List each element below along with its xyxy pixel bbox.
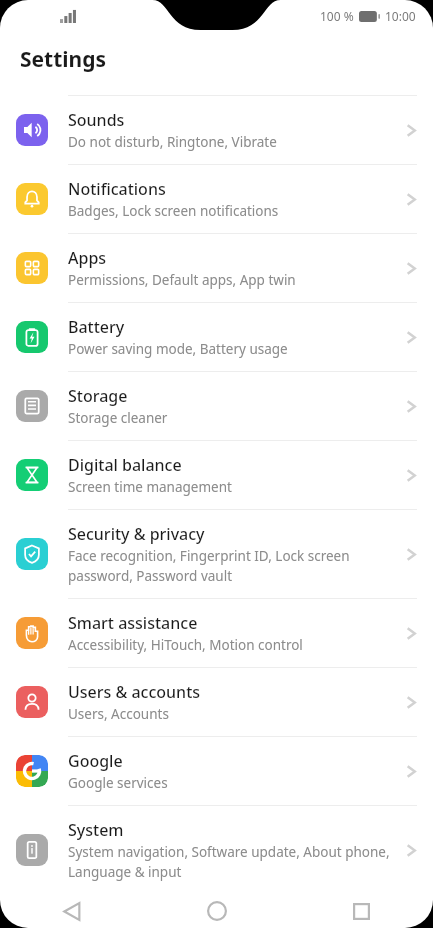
- button[interactable]: Battery: [0, 303, 433, 371]
- staticText: Settings: [20, 45, 107, 74]
- staticText: Badges, Lock screen notifications: [68, 202, 279, 220]
- button[interactable]: Digital balance: [0, 441, 433, 509]
- staticText: Storage: [68, 385, 128, 407]
- button[interactable]: Sounds: [0, 96, 433, 164]
- button[interactable]: Home: [145, 894, 289, 928]
- button[interactable]: Smart assistance: [0, 599, 433, 667]
- staticText: Google services: [68, 774, 168, 792]
- staticText: Screen time management: [68, 478, 232, 496]
- staticText: System: [68, 819, 124, 841]
- button[interactable]: Back: [0, 894, 145, 928]
- staticText: Storage cleaner: [68, 409, 168, 427]
- staticText: Sounds: [68, 109, 125, 131]
- staticText: 10:00: [385, 8, 416, 24]
- staticText: Face recognition, Fingerprint ID, Lock s…: [68, 547, 398, 585]
- staticText: Google: [68, 750, 123, 772]
- button[interactable]: Recent apps: [289, 894, 433, 928]
- button[interactable]: Apps: [0, 234, 433, 302]
- button[interactable]: Storage: [0, 372, 433, 440]
- staticText: Power saving mode, Battery usage: [68, 340, 288, 358]
- button[interactable]: System: [0, 806, 433, 894]
- staticText: Accessibility, HiTouch, Motion control: [68, 636, 303, 654]
- staticText: Notifications: [68, 178, 166, 200]
- button[interactable]: Notifications: [0, 165, 433, 233]
- staticText: 100 %: [320, 8, 354, 24]
- staticText: Do not disturb, Ringtone, Vibrate: [68, 133, 277, 151]
- staticText: Apps: [68, 247, 107, 269]
- button[interactable]: Security & privacy: [0, 510, 433, 598]
- staticText: Smart assistance: [68, 612, 198, 634]
- staticText: System navigation, Software update, Abou…: [68, 843, 398, 881]
- staticText: Users & accounts: [68, 681, 201, 703]
- button[interactable]: Users & accounts: [0, 668, 433, 736]
- staticText: Users, Accounts: [68, 705, 169, 723]
- staticText: Digital balance: [68, 454, 182, 476]
- staticText: Security & privacy: [68, 523, 205, 545]
- button[interactable]: Google: [0, 737, 433, 805]
- staticText: Battery: [68, 316, 125, 338]
- staticText: Permissions, Default apps, App twin: [68, 271, 296, 289]
